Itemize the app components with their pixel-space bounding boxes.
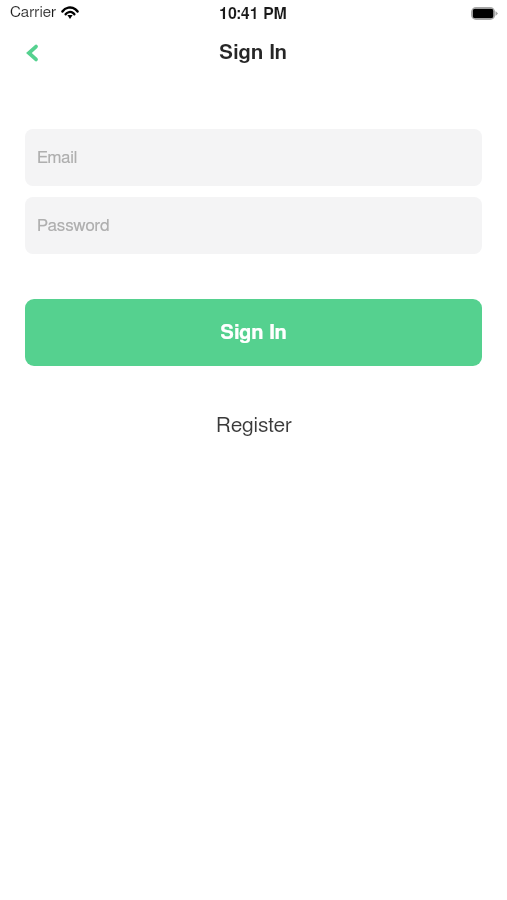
button[interactable]: Sign In xyxy=(25,299,482,366)
staticText: Carrier xyxy=(10,5,57,21)
staticText: Sign In xyxy=(220,323,287,343)
staticText: Password xyxy=(37,217,110,234)
staticText: Register xyxy=(216,415,292,436)
button[interactable]: Password xyxy=(25,197,482,254)
staticText: 10:41 PM xyxy=(219,6,288,22)
staticText: Sign In xyxy=(219,43,288,63)
button[interactable]: Email xyxy=(25,129,482,186)
button[interactable]: Register xyxy=(206,411,302,440)
staticText: Email xyxy=(37,149,78,166)
button[interactable]: Back xyxy=(10,29,52,71)
